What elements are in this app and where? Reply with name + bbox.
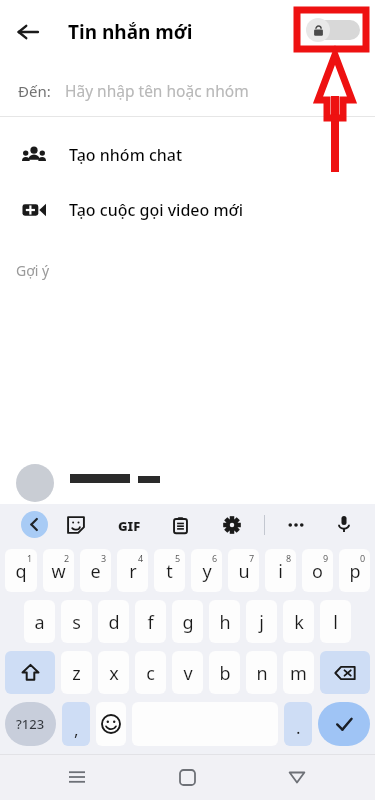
staticText: o [312,559,323,584]
button[interactable]: Emoji [96,702,126,746]
button[interactable]: GIF [118,517,141,535]
button[interactable]: Shift [5,651,55,694]
staticText: y [202,559,212,584]
staticText: r [129,559,137,584]
button[interactable]: l [320,600,351,643]
button[interactable]: Back [277,757,317,797]
button[interactable]: d [98,600,129,643]
button[interactable]: f [135,600,166,643]
button[interactable]: t [154,549,185,592]
button[interactable]: Stickers [62,511,90,539]
staticText: b [219,661,231,686]
button[interactable]: q [5,549,37,592]
staticText: Hãy nhập tên hoặc nhóm [65,80,249,101]
staticText: Tạo cuộc gọi video mới [69,199,244,221]
staticText: g [182,610,194,635]
button[interactable]: y [191,549,222,592]
button[interactable]: w [43,549,74,592]
staticText: 4 [138,552,144,564]
button[interactable]: c [135,651,166,694]
staticText: ?123 [16,715,45,733]
button[interactable]: x [98,651,129,694]
staticText: . [296,716,301,739]
button[interactable]: ?123 [5,702,56,746]
button[interactable]: g [172,600,203,643]
button[interactable]: , [62,702,90,746]
staticText: 9 [323,552,329,564]
button[interactable]: m [283,651,314,694]
staticText: v [183,661,193,686]
button[interactable]: k [283,600,314,643]
staticText: 7 [249,552,255,564]
staticText: u [238,559,250,584]
staticText: z [72,661,81,686]
staticText: s [72,610,81,635]
staticText: p [349,559,361,584]
button[interactable]: b [209,651,240,694]
button[interactable]: Back [21,511,48,538]
staticText: d [108,610,120,635]
button[interactable]: Enter [318,702,370,746]
staticText: c [146,661,155,686]
button[interactable]: u [228,549,259,592]
button[interactable]: Clipboard [166,511,194,539]
button[interactable]: v [172,651,203,694]
staticText: l [333,610,338,635]
staticText: q [15,559,27,584]
staticText: e [90,559,101,584]
button[interactable]: i [265,549,296,592]
staticText: h [219,610,231,635]
staticText: 2 [64,552,70,564]
button[interactable]: Settings [218,511,246,539]
staticText: Tin nhắn mới [68,19,193,45]
staticText: Gợi ý [16,261,50,280]
button[interactable]: o [302,549,333,592]
staticText: t [166,559,173,584]
staticText: , [74,718,79,741]
button[interactable]: z [61,651,92,694]
button[interactable]: Recent apps [57,757,97,797]
staticText: w [51,559,66,584]
button[interactable]: More options [282,511,310,539]
staticText: m [290,661,307,686]
button[interactable]: Tạo cuộc gọi video mới [0,183,375,237]
staticText: 3 [101,552,107,564]
button[interactable]: a [24,600,55,643]
button[interactable]: Back [10,14,46,50]
button[interactable]: s [61,600,92,643]
staticText: j [259,610,264,635]
staticText: x [109,661,119,686]
button[interactable]: h [209,600,240,643]
button[interactable]: e [80,549,111,592]
staticText: f [147,610,154,635]
staticText: 5 [175,552,181,564]
button[interactable]: n [246,651,277,694]
button[interactable]: Home [167,757,207,797]
button[interactable]: p [339,549,370,592]
staticText: Tạo nhóm chat [69,144,183,166]
button[interactable]: Voice input [330,510,358,538]
staticText: 0 [360,552,366,564]
staticText: 6 [212,552,218,564]
button[interactable]: Lock secret conversation [306,18,360,42]
staticText: 8 [286,552,292,564]
staticText: k [294,610,304,635]
staticText: i [278,559,283,584]
button[interactable]: r [117,549,148,592]
button[interactable]: j [246,600,277,643]
staticText: a [34,610,45,635]
button[interactable]: . [284,702,312,746]
staticText: 1 [27,552,33,564]
button[interactable]: Backspace [320,651,370,694]
staticText: Đến: [18,81,51,101]
staticText: n [256,661,268,686]
button[interactable]: Tạo nhóm chat [0,128,375,182]
